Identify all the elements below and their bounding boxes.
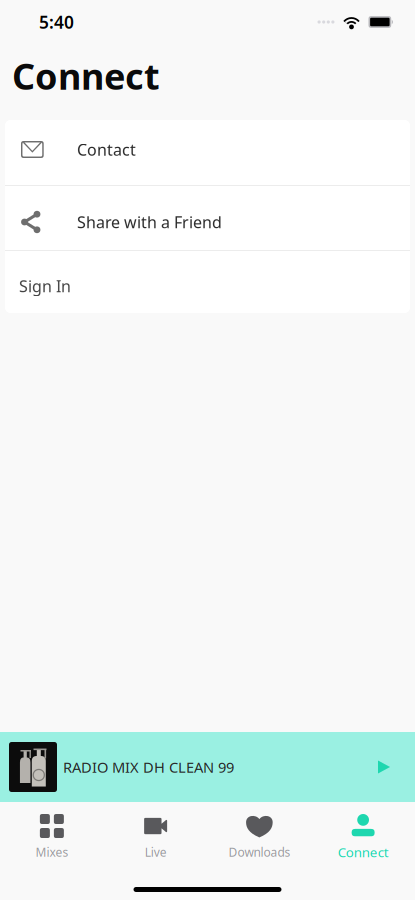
button[interactable]: Live [104,802,208,858]
button[interactable]: Share with a Friend [5,186,410,250]
staticText: 5:40 [39,10,74,33]
button[interactable]: Contact [5,120,410,185]
staticText: Share with a Friend [77,211,222,233]
staticText: Connect [12,52,160,100]
button[interactable]: Mixes [0,802,104,858]
staticText: Live [145,844,167,860]
button[interactable]: RADIO MIX DH CLEAN 99 [0,732,415,802]
staticText: Mixes [35,844,68,860]
staticText: Contact [77,139,136,160]
staticText: Connect [338,843,389,861]
button[interactable]: Downloads [207,802,311,858]
button[interactable]: Sign In [5,251,410,313]
staticText: RADIO MIX DH CLEAN 99 [63,757,234,777]
staticText: Sign In [19,275,71,297]
button[interactable]: Connect [311,802,415,858]
staticText: Downloads [228,844,290,860]
